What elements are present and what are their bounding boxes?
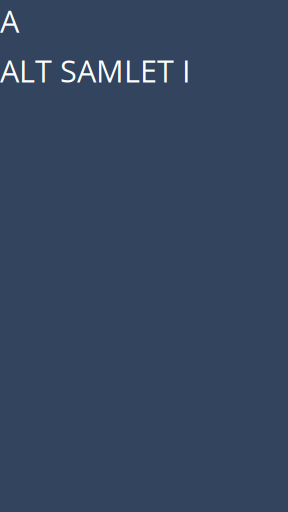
- staticText: ALT SAMLET I: [0, 50, 191, 92]
- staticText: A: [0, 0, 19, 42]
